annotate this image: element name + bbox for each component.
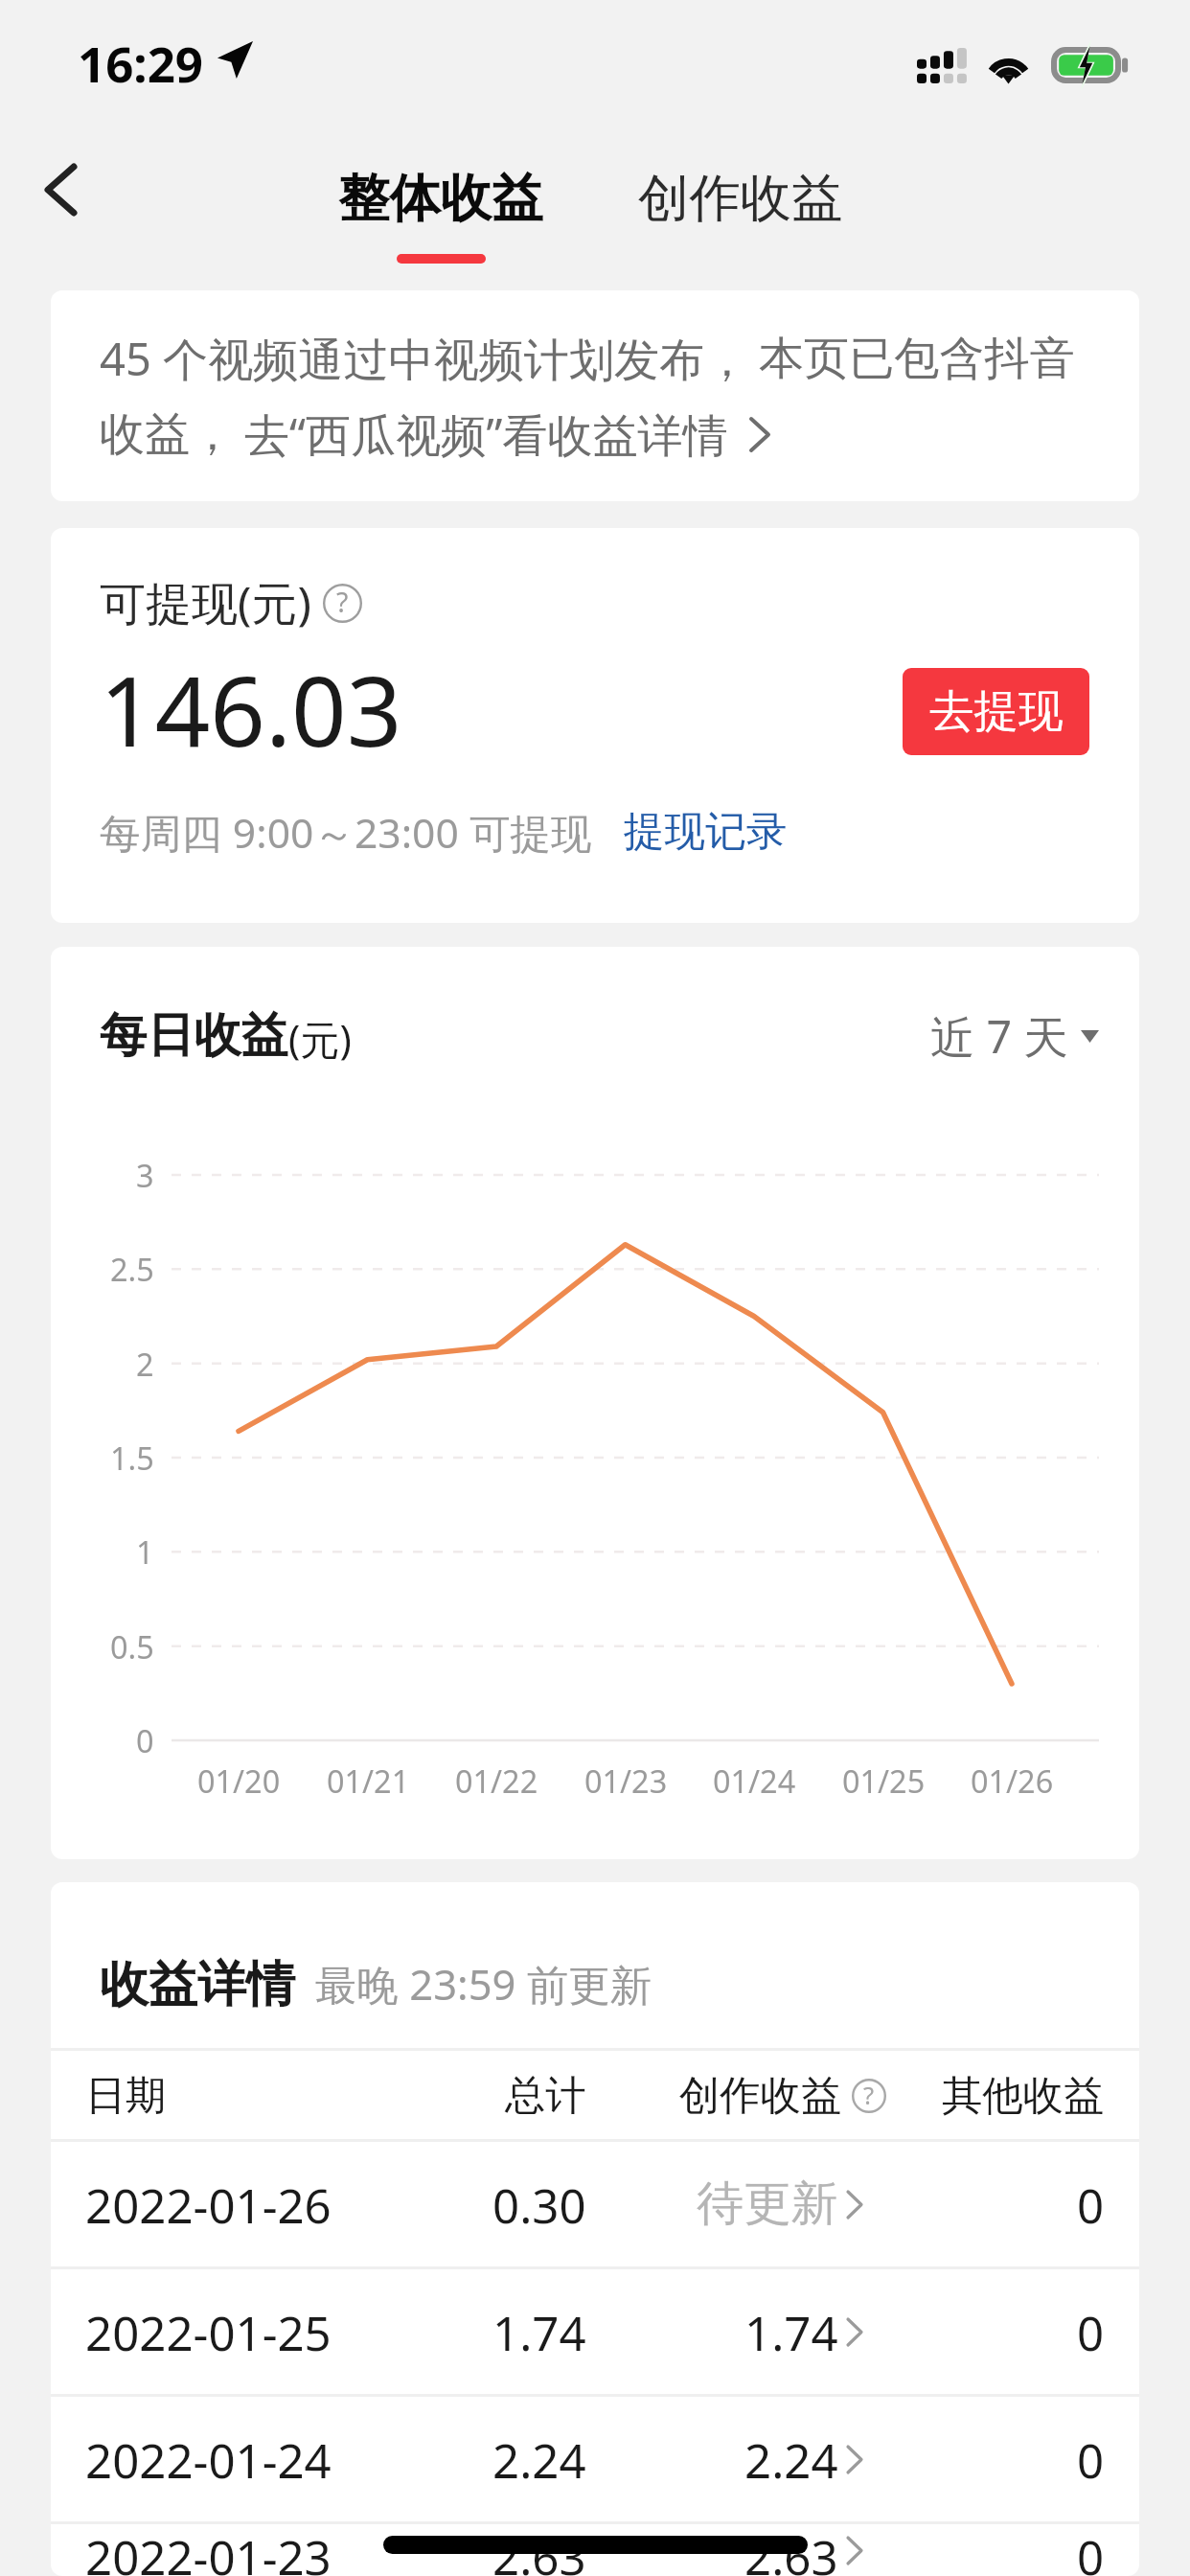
staticText: 提现记录 (624, 806, 788, 858)
staticText: 2022-01-26 (85, 2173, 332, 2237)
staticText: 01/26 (971, 1759, 1054, 1802)
staticText: 01/21 (327, 1759, 410, 1802)
staticText: 1 (136, 1530, 154, 1573)
staticText: ? (863, 2079, 875, 2112)
staticText: 2.24 (744, 2427, 838, 2492)
staticText: 0 (1077, 2300, 1105, 2364)
staticText: 每日收益 (100, 1006, 288, 1066)
staticText: 1.5 (110, 1437, 154, 1479)
staticText: 去提现 (929, 683, 1064, 740)
staticText: 0 (1077, 2524, 1105, 2576)
button[interactable]: 2022-01-26 (51, 2142, 1139, 2266)
staticText: 01/20 (197, 1759, 281, 1802)
staticText: 最晚 23:59 前更新 (315, 1955, 652, 2012)
button[interactable]: Back (0, 129, 121, 250)
staticText: 1.74 (744, 2300, 838, 2364)
staticText: 2 (136, 1343, 154, 1385)
staticText: 整体收益 (338, 167, 543, 231)
staticText: 0 (1077, 2427, 1105, 2492)
staticText: 2022-01-25 (85, 2300, 332, 2364)
staticText: 3 (136, 1154, 154, 1196)
staticText: 2022-01-24 (85, 2427, 332, 2492)
staticText: 收益， (100, 406, 236, 463)
staticText: (元) (288, 1012, 352, 1066)
staticText: 0 (1077, 2173, 1105, 2237)
button[interactable]: 2022-01-24 (51, 2397, 1139, 2521)
button[interactable]: About creation earnings (852, 2079, 886, 2113)
staticText: 创作收益 (679, 2070, 842, 2121)
button[interactable]: About withdrawable balance (323, 584, 362, 623)
staticText: 可提现(元) (100, 571, 311, 634)
staticText: 0 (136, 1719, 154, 1761)
staticText: 01/23 (584, 1759, 668, 1802)
staticText: 146.03 (100, 643, 402, 774)
staticText: 01/25 (842, 1759, 926, 1802)
staticText: 1.74 (492, 2300, 586, 2364)
staticText: 总计 (505, 2070, 586, 2121)
staticText: 本页已包含抖音 (759, 331, 1075, 387)
button[interactable]: 近 7 天 (930, 1005, 1099, 1067)
staticText: 每周四 9:00～23:00 可提现 (100, 804, 592, 860)
staticText: 01/22 (455, 1759, 538, 1802)
staticText: 去“西瓜视频”看收益详情 (244, 403, 728, 465)
button[interactable]: 2022-01-23 (51, 2524, 1139, 2576)
staticText: 近 7 天 (930, 1005, 1068, 1067)
staticText: 2.5 (110, 1248, 154, 1290)
staticText: 2022-01-23 (85, 2524, 332, 2576)
staticText: 0.30 (492, 2173, 586, 2237)
staticText: 2.24 (492, 2427, 586, 2492)
staticText: 45 个视频通过中视频计划发布， (100, 328, 750, 389)
staticText: 收益详情 (100, 1954, 295, 2015)
button[interactable]: 45 个视频通过中视频计划发布， (51, 290, 1139, 501)
button[interactable]: 去提现 (903, 668, 1089, 755)
staticText: 日期 (85, 2070, 167, 2121)
button[interactable]: 整体收益 (324, 167, 558, 264)
staticText: 01/24 (713, 1759, 796, 1802)
staticText: 16:29 (78, 30, 204, 96)
staticText: 2.63 (744, 2524, 838, 2576)
staticText: 2.63 (492, 2524, 586, 2576)
staticText: 0.5 (110, 1625, 154, 1667)
button[interactable]: 2022-01-25 (51, 2269, 1139, 2394)
staticText: 创作收益 (638, 167, 843, 231)
staticText: 其他收益 (942, 2070, 1105, 2121)
staticText: ? (336, 584, 349, 621)
staticText: 待更新 (697, 2174, 838, 2234)
button[interactable]: 提现记录 (624, 806, 788, 858)
button[interactable]: 创作收益 (624, 167, 858, 231)
